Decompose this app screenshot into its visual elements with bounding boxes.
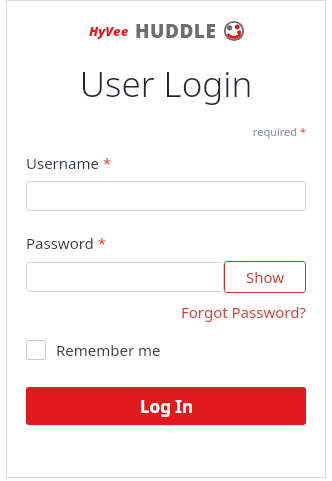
- staticText: User Login: [26, 60, 306, 108]
- staticText: Forgot Password?: [181, 302, 306, 322]
- staticText: HUDDLE: [135, 18, 217, 44]
- other: Huddle logo: [224, 21, 244, 41]
- staticText: Show: [246, 267, 285, 287]
- button[interactable]: Remember me: [26, 338, 161, 362]
- staticText: Username *: [26, 153, 112, 173]
- staticText: HyVee: [89, 22, 129, 40]
- staticText: required *: [26, 124, 306, 139]
- button[interactable]: Forgot Password?: [181, 302, 306, 322]
- staticText: Log In: [140, 395, 193, 418]
- button[interactable]: [26, 262, 224, 292]
- staticText: Remember me: [56, 340, 161, 360]
- button[interactable]: [26, 181, 306, 211]
- staticText: Password *: [26, 233, 107, 253]
- button[interactable]: Log In: [26, 387, 306, 425]
- button[interactable]: Show: [224, 261, 306, 293]
